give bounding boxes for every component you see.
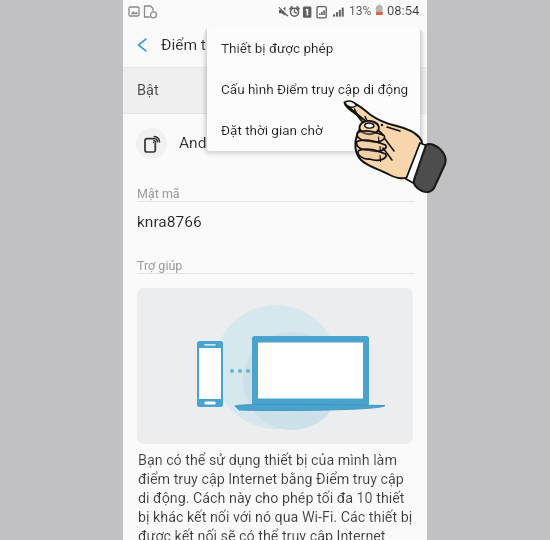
staticText: Đặt thời gian chờ — [221, 122, 323, 138]
staticText: Thiết bị được phép — [221, 40, 334, 56]
button[interactable]: AndroidHotspot2709 — [123, 114, 427, 172]
staticText: Trợ giúp — [137, 258, 183, 273]
staticText: 13% — [349, 4, 372, 18]
staticText: Cấu hình Điểm truy cập di động — [221, 81, 409, 97]
staticText: Điểm truy cập di động — [161, 36, 312, 54]
staticText: AndroidHotspot2709 — [179, 134, 324, 152]
staticText: Mật mã — [137, 186, 180, 201]
button[interactable]: Thiết bị được phép — [207, 27, 420, 68]
staticText: Bật — [137, 82, 159, 99]
staticText: knra8766 — [137, 213, 202, 231]
staticText: 08:54 — [387, 3, 420, 18]
button[interactable]: Back — [123, 24, 161, 66]
button[interactable]: Đặt thời gian chờ — [207, 109, 420, 150]
button[interactable]: Cấu hình Điểm truy cập di động — [207, 68, 420, 109]
button[interactable]: Bật — [123, 67, 427, 114]
staticText: Bạn có thể sử dụng thiết bị của mình làm… — [138, 452, 415, 540]
